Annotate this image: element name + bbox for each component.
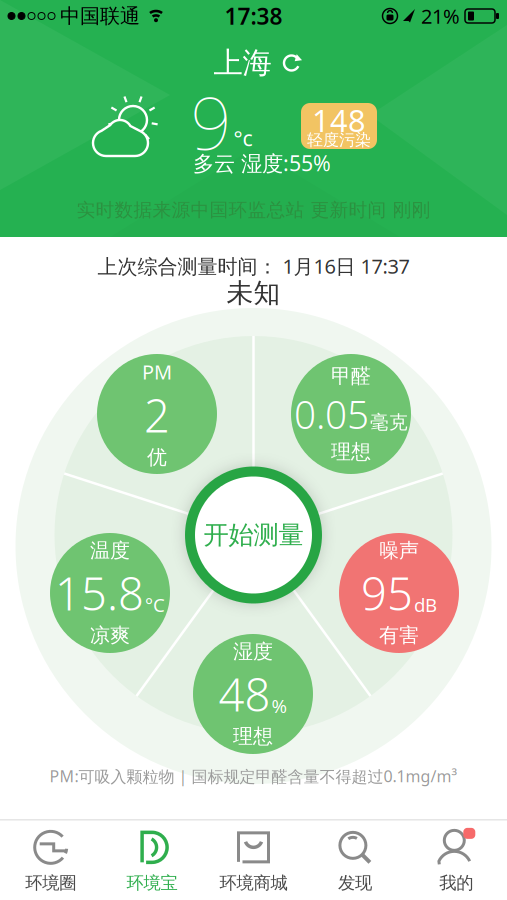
staticText: 我的 [439, 872, 473, 894]
staticText: 多云 湿度:55% [193, 149, 331, 177]
staticText: 理想 [233, 724, 273, 749]
staticText: °c [233, 124, 252, 152]
staticText: 凉爽 [90, 623, 130, 648]
staticText: 48 [218, 664, 270, 724]
staticText: °C [145, 592, 165, 617]
staticText: 上海 [213, 45, 271, 81]
staticText: 理想 [331, 440, 371, 464]
staticText: 17:38 [224, 1, 282, 31]
staticText: 148 [312, 100, 366, 140]
staticText: 发现 [338, 872, 372, 894]
staticText: 环境宝 [127, 872, 178, 894]
staticText: 2 [144, 385, 170, 445]
staticText: 实时数据来源中国环监总站 更新时间 刚刚 [76, 198, 430, 221]
staticText: 0.05 [294, 388, 369, 440]
button[interactable]: 发现 [304, 826, 406, 894]
staticText: PM [142, 358, 172, 385]
staticText: 上次综合测量时间： 1月16日 17:37 [97, 253, 409, 279]
staticText: % [271, 693, 287, 718]
staticText: 湿度 [233, 639, 273, 664]
staticText: 9 [190, 74, 231, 170]
button[interactable]: 环境宝 [101, 826, 203, 894]
staticText: 95 [361, 563, 413, 623]
staticText: 未知 [226, 277, 280, 309]
button[interactable]: 环境商城 [203, 826, 304, 894]
button[interactable]: 刷新城市 [213, 45, 302, 81]
staticText: 中国联通 [60, 4, 140, 28]
button[interactable]: 开始测量 [183, 465, 323, 605]
staticText: 轻度污染 [307, 130, 371, 150]
staticText: 毫克 [370, 411, 408, 434]
staticText: 优 [147, 445, 167, 470]
staticText: 噪声 [379, 538, 419, 563]
button[interactable]: 我的 [406, 826, 507, 894]
staticText: 温度 [90, 538, 130, 563]
staticText: 有害 [379, 623, 419, 648]
button[interactable]: 环境圈 [0, 826, 101, 894]
staticText: 环境圈 [25, 872, 76, 894]
staticText: PM:可吸入颗粒物 | 国标规定甲醛含量不得超过0.1mg/m³ [49, 765, 457, 787]
staticText: 甲醛 [331, 364, 371, 388]
button[interactable]: 空气质量 148 轻度污染 [301, 103, 377, 149]
staticText: 环境商城 [219, 872, 287, 894]
staticText: dB [414, 592, 437, 617]
staticText: 21% [421, 3, 460, 29]
staticText: 开始测量 [203, 519, 303, 550]
staticText: 15.8 [55, 563, 144, 623]
